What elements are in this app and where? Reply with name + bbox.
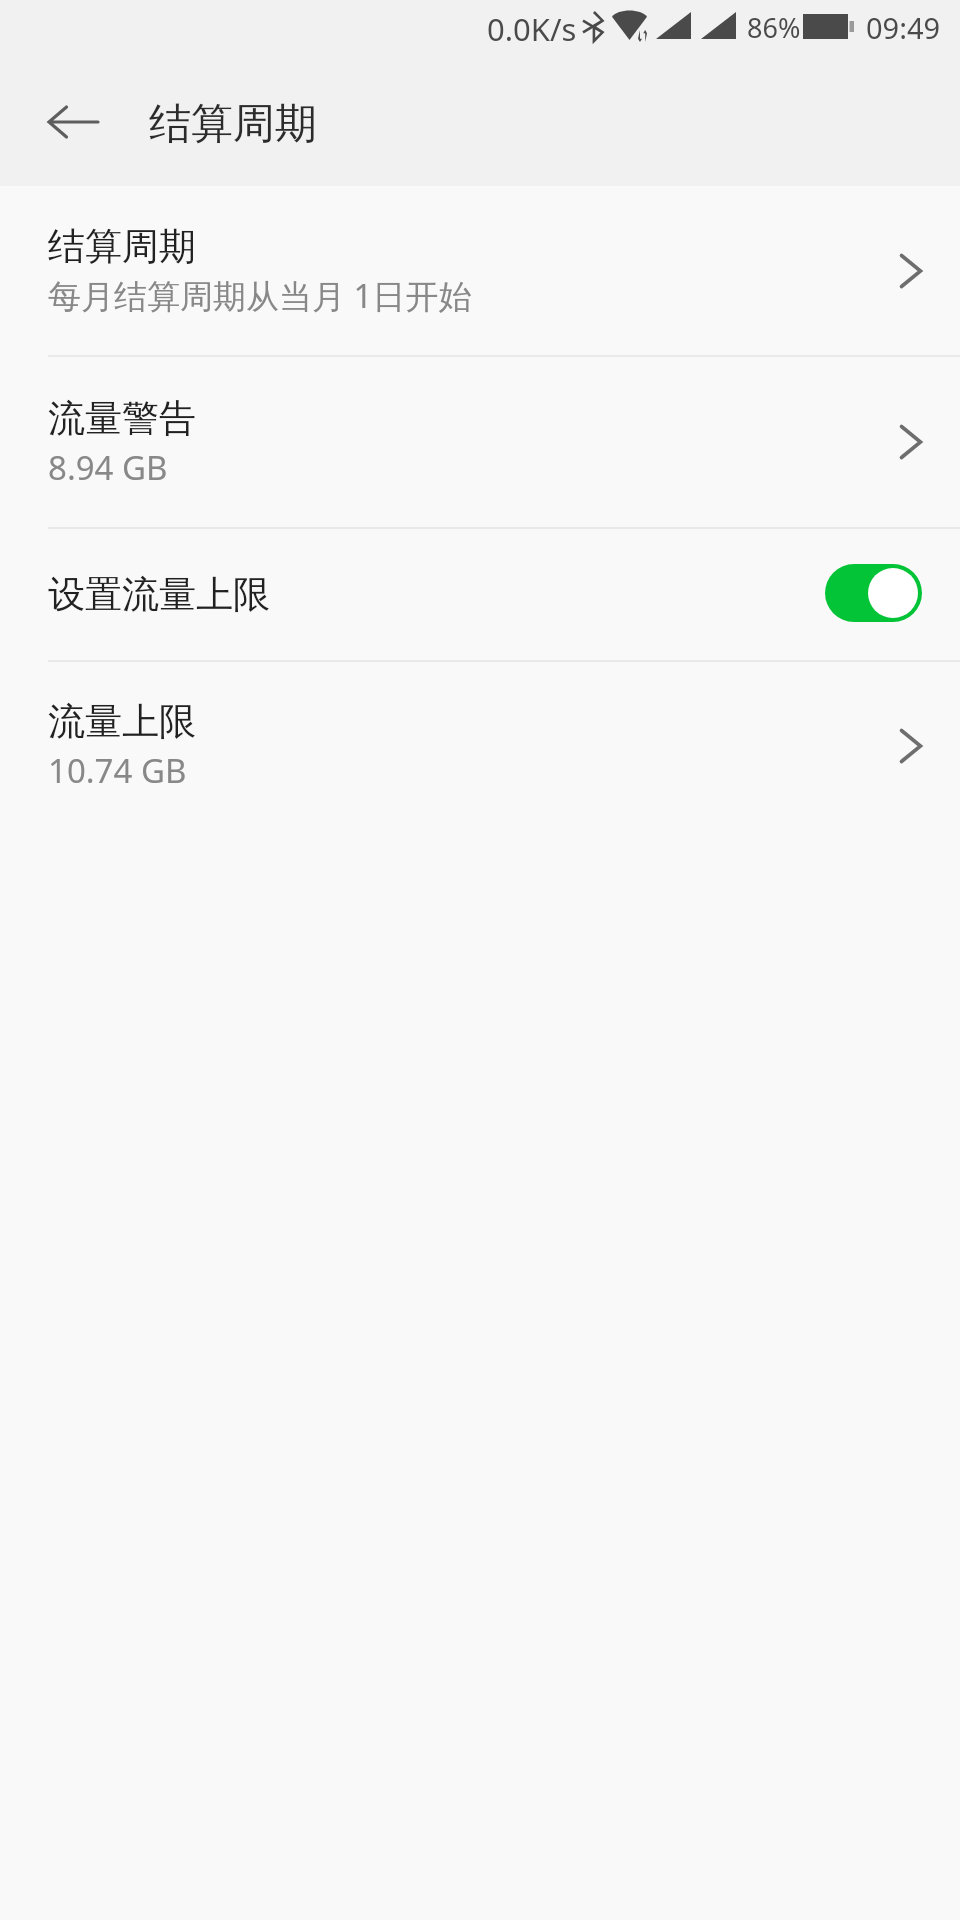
staticText: 09:49 (866, 8, 941, 47)
button[interactable]: Set data limit (825, 564, 922, 622)
button[interactable]: 设置流量上限 (0, 529, 960, 660)
staticText: 结算周期 (149, 98, 317, 151)
staticText: 结算周期 (48, 223, 196, 270)
staticText: 0.0K/s (487, 8, 577, 50)
button[interactable]: 结算周期 (0, 186, 960, 355)
staticText: 10.74 GB (48, 748, 187, 793)
staticText: 每月结算周期从当月 1日开始 (48, 273, 472, 318)
staticText: 流量上限 (48, 698, 196, 745)
staticText: 设置流量上限 (48, 571, 825, 618)
staticText: 8.94 GB (48, 445, 168, 490)
button[interactable]: 流量上限 (0, 662, 960, 829)
button[interactable]: Back (37, 86, 109, 158)
button[interactable]: 流量警告 (0, 357, 960, 527)
staticText: 86% (747, 9, 801, 46)
staticText: 流量警告 (48, 395, 196, 442)
